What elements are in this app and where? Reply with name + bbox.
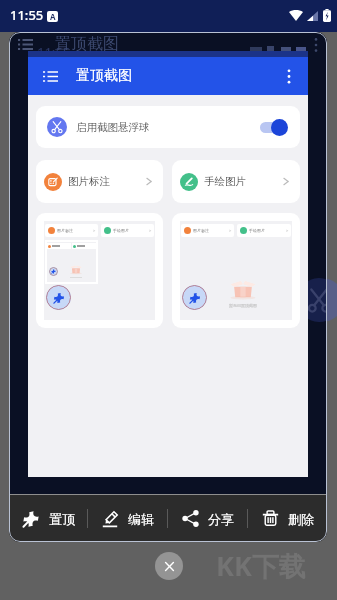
staticText: 图片标注 [193,228,209,233]
staticText: 图片标注 [57,228,73,233]
button[interactable]: 启用截图悬浮球 [36,106,300,148]
staticText: KK下载 [216,547,306,584]
staticText: 删除 [288,511,314,527]
staticText: 置顶截图 [76,67,132,85]
staticText: 11:55 [37,43,71,61]
button[interactable]: Menu [39,65,61,87]
button[interactable]: 图片标注 [36,213,163,328]
button[interactable]: 删除 [248,495,327,542]
button[interactable]: 手绘图片 [172,160,300,203]
staticText: 启用截图悬浮球 [76,121,150,134]
staticText: 暂无已置顶截图 [229,303,257,308]
staticText: > [149,228,152,233]
button[interactable]: Close [155,552,183,580]
button[interactable]: Floating screenshot button [297,278,327,322]
button[interactable]: 置顶 [9,495,87,542]
staticText: A [50,11,56,22]
button[interactable]: 图片标注 [172,213,300,328]
staticText: 图片标注 [68,175,110,188]
staticText: > [229,228,232,233]
staticText: 手绘图片 [113,228,129,233]
staticText: 置顶 [49,511,75,527]
button[interactable]: Pin [182,285,207,310]
staticText: > [93,228,96,233]
staticText: 手绘图片 [204,175,246,188]
staticText: 手绘图片 [249,228,265,233]
staticText: 编辑 [128,511,154,527]
button[interactable]: 图片标注 [36,160,163,203]
staticText: 分享 [208,511,234,527]
staticText: > [286,228,289,233]
button[interactable]: 分享 [168,495,247,542]
button[interactable]: More options [278,65,300,87]
staticText: 置顶截图 [55,34,119,54]
button[interactable]: Pin [46,285,71,310]
button[interactable]: 编辑 [88,495,167,542]
staticText: 11:55 [10,6,44,24]
